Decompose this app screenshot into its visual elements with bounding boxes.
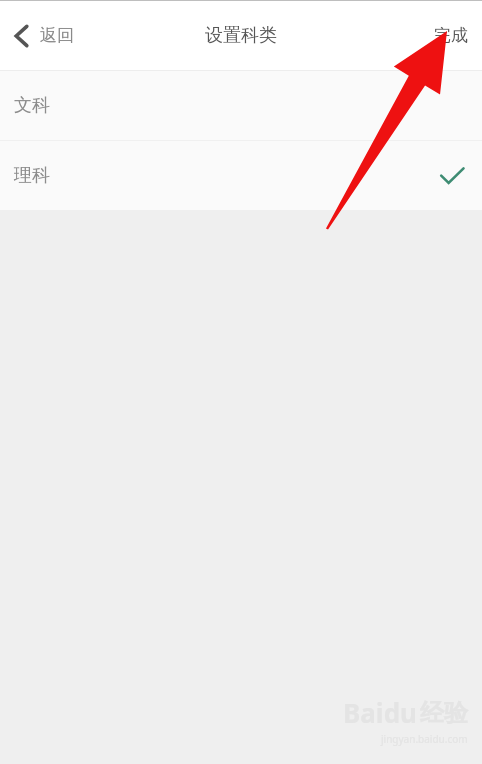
staticText: 设置科类	[205, 24, 277, 47]
staticText: jingyan.baidu.com	[381, 732, 468, 746]
other: Selected	[440, 167, 464, 185]
button[interactable]: 完成	[420, 1, 482, 70]
staticText: 理科	[14, 164, 50, 187]
button[interactable]: 理科	[0, 141, 482, 210]
staticText: 完成	[434, 25, 468, 46]
staticText: 文科	[14, 94, 50, 117]
button[interactable]: 文科	[0, 71, 482, 140]
staticText: 经验	[420, 698, 468, 728]
staticText: 返回	[40, 25, 74, 46]
staticText: Baidu	[343, 695, 417, 730]
button[interactable]: 返回	[0, 1, 90, 70]
